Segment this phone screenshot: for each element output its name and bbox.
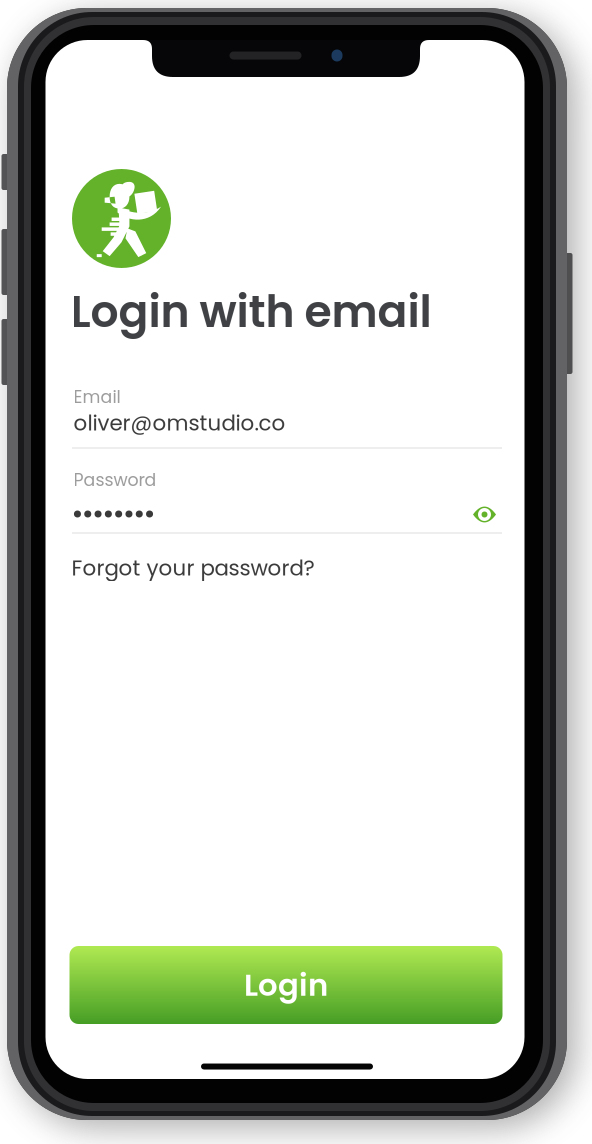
button[interactable]: Login [69,946,502,1024]
staticText: Login with email [70,281,431,342]
staticText: Email [73,385,120,409]
staticText: Password [73,468,156,492]
staticText: Forgot your password? [71,553,314,583]
button[interactable]: Show password [472,505,496,523]
button[interactable]: Forgot your password? [45,40,524,1079]
staticText: oliver@omstudio.co [73,408,285,438]
staticText: Login [244,963,328,1006]
